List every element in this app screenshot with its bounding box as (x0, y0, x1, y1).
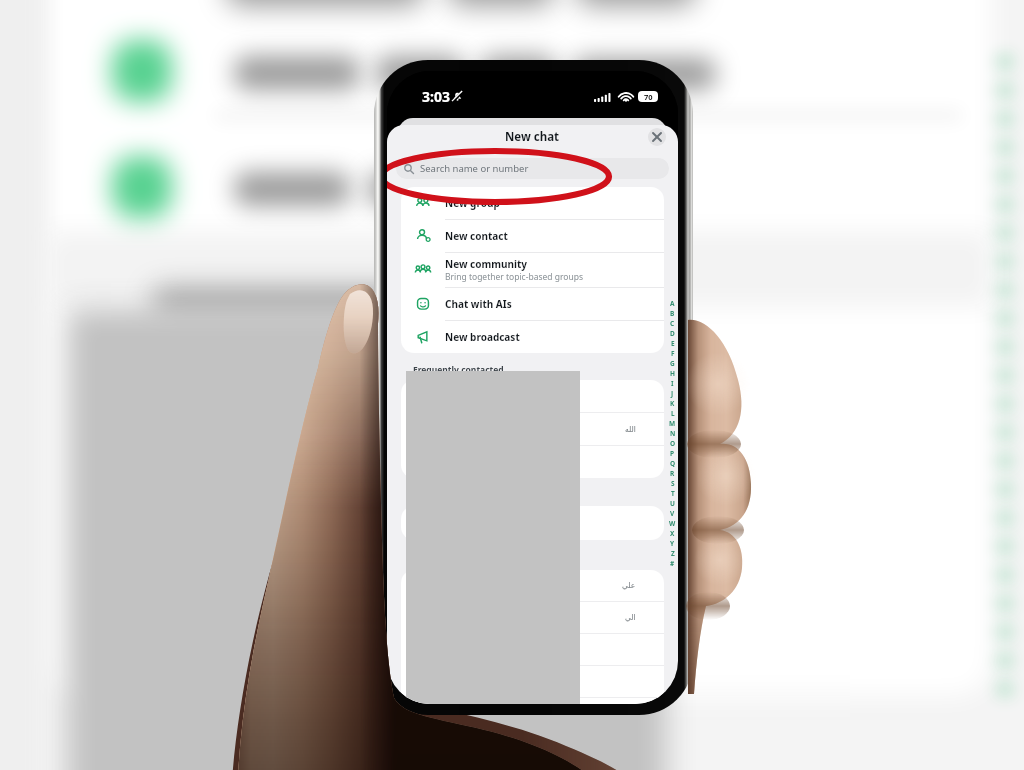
button[interactable]: New community (401, 253, 664, 288)
staticText: T (671, 489, 675, 498)
staticText: V (670, 509, 675, 518)
button[interactable]: New broadcast (401, 321, 664, 353)
staticText: E (671, 339, 675, 348)
staticText: R (670, 469, 675, 478)
button[interactable] (401, 666, 664, 697)
button[interactable]: علي (401, 570, 664, 601)
staticText: Q (670, 459, 676, 468)
staticText: الله (625, 425, 636, 434)
staticText: Search name or number (420, 162, 529, 175)
staticText: H (670, 369, 675, 378)
button[interactable]: New contact (401, 220, 664, 253)
staticText: O (670, 439, 676, 448)
button[interactable] (401, 698, 664, 704)
button[interactable] (401, 634, 664, 665)
staticText: X (670, 529, 675, 538)
staticText: Z (671, 549, 675, 558)
button[interactable]: Search name or number (396, 158, 669, 179)
staticText: L (671, 409, 675, 418)
staticText: C (670, 319, 675, 328)
staticText: New group (445, 196, 500, 210)
staticText: New community (445, 257, 528, 271)
staticText: Y (670, 539, 675, 548)
staticText: N (670, 429, 676, 438)
button[interactable]: Close (648, 128, 666, 146)
staticText: Bring together topic-based groups (445, 271, 583, 283)
staticText: K (670, 399, 675, 408)
staticText: Frequently contacted (413, 364, 504, 376)
staticText: # (670, 559, 675, 568)
staticText: علي (622, 581, 636, 590)
staticText: D (670, 329, 675, 338)
staticText: الي (625, 613, 636, 622)
staticText: S (671, 479, 675, 488)
staticText: 70 (644, 92, 653, 102)
staticText: I (671, 379, 674, 388)
staticText: W (669, 519, 676, 528)
button[interactable] (401, 506, 664, 540)
staticText: P (670, 449, 675, 458)
button[interactable] (401, 446, 664, 478)
staticText: M (669, 419, 676, 428)
button[interactable]: الي (401, 602, 664, 633)
staticText: B (670, 309, 675, 318)
staticText: F (671, 349, 675, 358)
staticText: Chat with AIs (445, 297, 512, 311)
button[interactable]: Chat with AIs (401, 288, 664, 321)
staticText: New broadcast (445, 330, 520, 344)
staticText: New chat (505, 129, 560, 145)
button[interactable] (401, 380, 664, 412)
staticText: New contact (445, 229, 508, 243)
staticText: U (670, 499, 675, 508)
button[interactable]: الله (401, 413, 664, 445)
staticText: A (670, 299, 675, 308)
staticText: G (670, 359, 675, 368)
staticText: 3:03 (422, 87, 450, 106)
button[interactable]: New group (401, 187, 664, 220)
staticText: J (671, 389, 674, 398)
